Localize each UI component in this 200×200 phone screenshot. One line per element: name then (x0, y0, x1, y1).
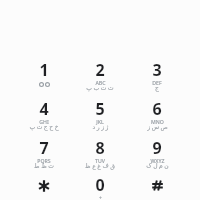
staticText: PQRS (37, 157, 51, 164)
staticText: JKL (96, 118, 104, 125)
staticText: 4 (39, 98, 49, 120)
staticText: 7 (39, 137, 49, 159)
staticText: WXYZ (150, 157, 165, 164)
staticText: ص س ز (147, 123, 168, 131)
staticText: 3 (152, 59, 162, 81)
staticText: 8 (95, 137, 105, 159)
button[interactable]: 4 GHI (17, 95, 71, 139)
staticText: خ ح ج ث پ (29, 123, 59, 131)
staticText: DEF (152, 79, 162, 86)
button[interactable]: 7 PQRS (17, 134, 71, 178)
staticText: GHI (39, 118, 49, 125)
staticText: ن م ل ک (146, 162, 169, 170)
button[interactable]: 9 WXYZ (130, 134, 184, 178)
staticText: ABC (95, 79, 106, 86)
button[interactable]: 6 MNO (130, 95, 184, 139)
staticText: ج (155, 84, 159, 91)
staticText: 1 (39, 59, 49, 81)
staticText: 2 (95, 59, 105, 81)
button[interactable]: 8 TUV (73, 134, 127, 178)
staticText: 0 (95, 174, 105, 196)
staticText: MNO (151, 118, 164, 125)
staticText: ق ف غ ع ظ (85, 162, 115, 170)
staticText: 9 (152, 137, 162, 159)
staticText: 5 (95, 98, 105, 120)
staticText: ث ظ ط (34, 162, 54, 170)
button[interactable]: Star (17, 171, 71, 200)
button[interactable]: 1 voicemail (17, 56, 71, 100)
staticText: ژ ز ر د (92, 123, 109, 131)
button[interactable]: 5 JKL (73, 95, 127, 139)
staticText: + (99, 194, 102, 200)
staticText: TUV (95, 157, 105, 164)
staticText: ث ت ب پ (86, 84, 114, 92)
button[interactable]: 0 plus (73, 171, 127, 200)
staticText: 6 (152, 98, 162, 120)
button[interactable]: Pound (130, 171, 184, 200)
button[interactable]: 2 ABC (73, 56, 127, 100)
button[interactable]: 3 DEF (130, 56, 184, 100)
